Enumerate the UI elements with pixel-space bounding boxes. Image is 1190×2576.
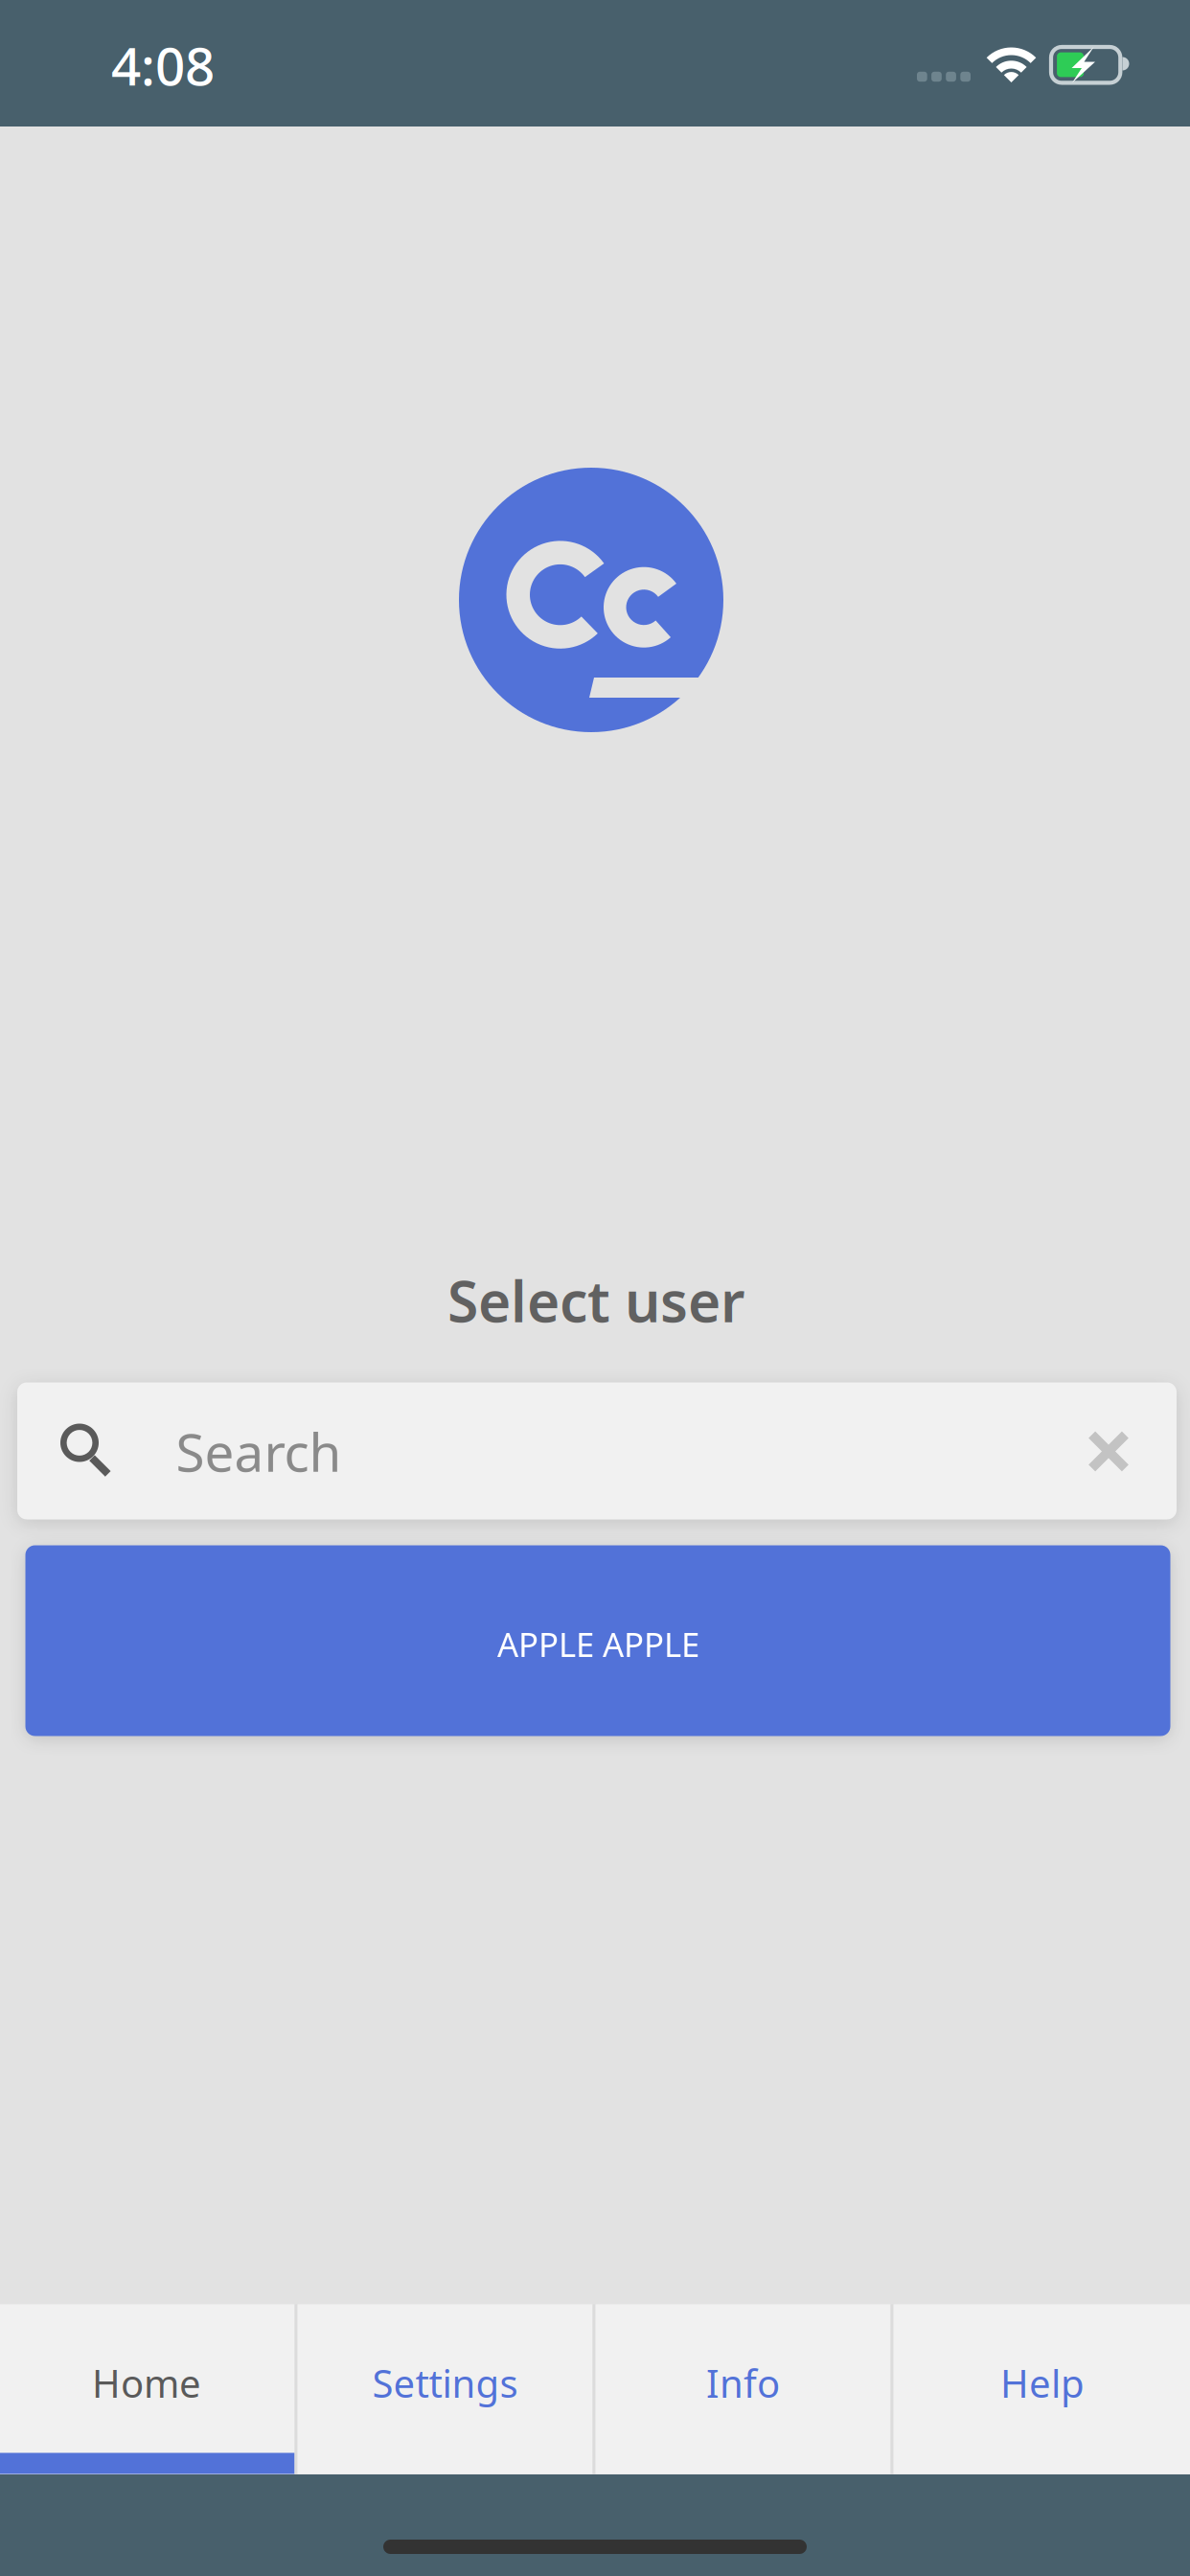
button[interactable]: APPLE APPLE <box>25 1545 1170 1736</box>
staticText: Help <box>1000 2357 1085 2408</box>
button[interactable]: Search <box>17 1382 1177 1519</box>
staticText: Home <box>92 2357 201 2408</box>
staticText: APPLE APPLE <box>497 1622 699 1666</box>
staticText: Info <box>706 2357 780 2408</box>
staticText: Settings <box>372 2357 518 2408</box>
staticText: 4:08 <box>111 30 215 100</box>
button[interactable]: Settings <box>297 2304 593 2474</box>
staticText: Select user <box>447 1263 744 1338</box>
button[interactable]: Help <box>893 2304 1190 2474</box>
button[interactable]: Info <box>595 2304 891 2474</box>
staticText: Search <box>176 1417 342 1486</box>
button[interactable]: Home <box>0 2304 295 2474</box>
